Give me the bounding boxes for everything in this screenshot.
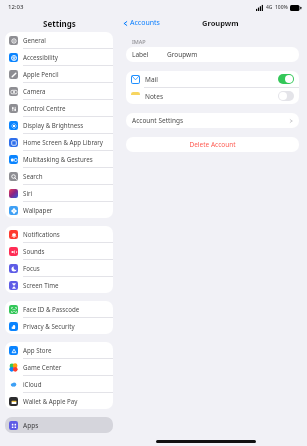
- staticText: Settings: [43, 18, 76, 29]
- staticText: Groupwm: [167, 50, 198, 59]
- button[interactable]: Search: [5, 168, 113, 184]
- button[interactable]: General: [5, 32, 113, 48]
- staticText: Home Screen & App Library: [23, 138, 103, 146]
- button[interactable]: Apps: [5, 417, 113, 433]
- staticText: Notifications: [23, 230, 60, 238]
- button[interactable]: Multitasking & Gestures: [5, 151, 113, 167]
- staticText: Face ID & Passcode: [23, 305, 80, 313]
- button[interactable]: Accessibility: [5, 49, 113, 65]
- button[interactable]: Camera: [5, 83, 113, 99]
- staticText: General: [23, 36, 46, 44]
- staticText: Label: [132, 50, 149, 59]
- staticText: Mail: [145, 75, 158, 84]
- button[interactable]: Privacy & Security: [5, 318, 113, 334]
- staticText: Accessibility: [23, 53, 58, 61]
- button[interactable]: Mail: [126, 71, 299, 87]
- staticText: Screen Time: [23, 281, 59, 289]
- staticText: IMAP: [132, 38, 146, 45]
- staticText: Multitasking & Gestures: [23, 155, 93, 163]
- staticText: Accounts: [130, 18, 160, 28]
- button[interactable]: Account Settings: [126, 113, 299, 128]
- staticText: App Store: [23, 346, 52, 354]
- button[interactable]: Wallpaper: [5, 202, 113, 218]
- staticText: Focus: [23, 264, 40, 272]
- staticText: Sounds: [23, 247, 45, 255]
- staticText: Account Settings: [132, 116, 184, 125]
- button[interactable]: Home Screen & App Library: [5, 134, 113, 150]
- staticText: 100%: [275, 4, 288, 11]
- staticText: Display & Brightness: [23, 121, 84, 129]
- staticText: 4G: [266, 4, 273, 11]
- staticText: Delete Account: [189, 140, 236, 149]
- button[interactable]: iCloud: [5, 376, 113, 392]
- button[interactable]: Screen Time: [5, 277, 113, 293]
- staticText: Game Center: [23, 363, 62, 371]
- button[interactable]: Apple Pencil: [5, 66, 113, 82]
- button[interactable]: Focus: [5, 260, 113, 276]
- button[interactable]: Control Centre: [5, 100, 113, 116]
- staticText: Camera: [23, 87, 46, 95]
- staticText: iCloud: [23, 380, 42, 388]
- button[interactable]: App Store: [5, 342, 113, 358]
- button[interactable]: Face ID & Passcode: [5, 301, 113, 317]
- staticText: Groupwm: [202, 18, 239, 28]
- staticText: Siri: [23, 189, 33, 197]
- staticText: 12:03: [8, 3, 24, 11]
- button[interactable]: Game Center: [5, 359, 113, 375]
- button[interactable]: Label: [126, 47, 299, 62]
- button[interactable]: Display & Brightness: [5, 117, 113, 133]
- staticText: Wallpaper: [23, 206, 53, 214]
- button[interactable]: Siri: [5, 185, 113, 201]
- staticText: Notes: [145, 92, 163, 101]
- button[interactable]: Accounts: [123, 18, 160, 28]
- staticText: Search: [23, 172, 43, 180]
- staticText: Privacy & Security: [23, 322, 75, 330]
- staticText: Apps: [23, 421, 39, 430]
- button[interactable]: Wallet & Apple Pay: [5, 393, 113, 409]
- staticText: Wallet & Apple Pay: [23, 397, 78, 405]
- button[interactable]: Delete Account: [126, 137, 299, 152]
- button[interactable]: Notes: [126, 88, 299, 104]
- button[interactable]: Sounds: [5, 243, 113, 259]
- button[interactable]: Notifications: [5, 226, 113, 242]
- staticText: Apple Pencil: [23, 70, 59, 78]
- staticText: Control Centre: [23, 104, 66, 112]
